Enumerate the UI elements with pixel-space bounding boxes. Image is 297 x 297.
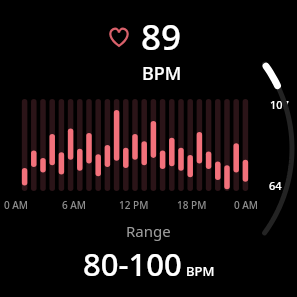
- button[interactable]: Heart rate: [0, 13, 297, 86]
- staticText: 0 AM: [4, 198, 29, 212]
- staticText: 6 AM: [62, 198, 87, 212]
- button[interactable]: Range: [0, 221, 297, 285]
- staticText: 89: [141, 13, 182, 61]
- staticText: 12 PM: [119, 198, 149, 212]
- staticText: BPM: [142, 61, 182, 86]
- staticText: BPM: [186, 262, 215, 280]
- staticText: 64: [269, 178, 282, 193]
- staticText: Range: [126, 221, 171, 241]
- staticText: 80-100: [83, 243, 182, 285]
- button[interactable]: Heart rate chart: [0, 97, 297, 193]
- staticText: 18 PM: [177, 198, 207, 212]
- staticText: 107: [270, 97, 289, 112]
- staticText: 0 AM: [234, 198, 259, 212]
- other: Heart rate: [108, 26, 130, 48]
